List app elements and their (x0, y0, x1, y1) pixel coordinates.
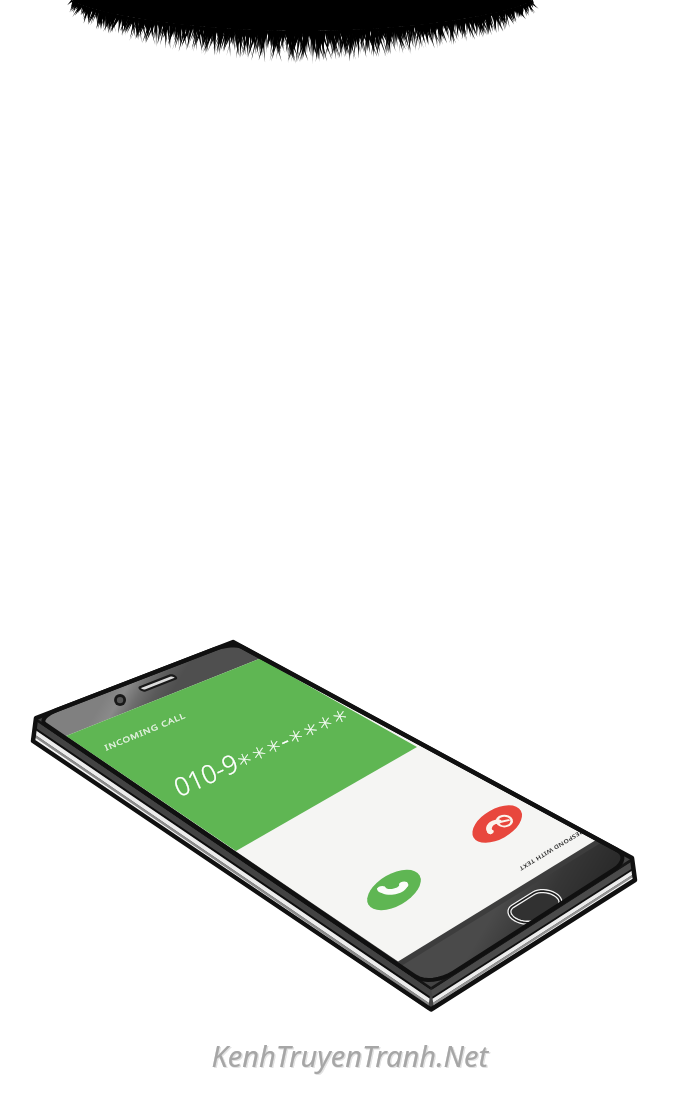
button[interactable]: Incoming call on smartphone (0, 0, 700, 1100)
